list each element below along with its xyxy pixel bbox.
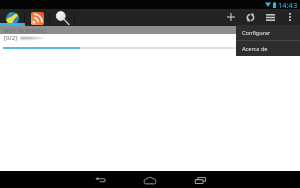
button[interactable]: [0/2] [0, 34, 300, 52]
staticText: 14:43 [278, 0, 298, 9]
staticText: Acerca de [242, 45, 268, 53]
button[interactable]: Back [89, 173, 111, 187]
button[interactable]: Browser tab [0, 10, 25, 26]
button[interactable]: More options [281, 9, 299, 25]
button[interactable]: Recent apps [189, 173, 211, 187]
button[interactable]: Configurar [236, 25, 300, 40]
staticText: NOT_RUNNING [4, 27, 48, 35]
button[interactable]: Feeds tab [25, 10, 50, 26]
button[interactable]: Add [221, 9, 240, 25]
button[interactable]: Home [139, 173, 161, 187]
button[interactable]: Acerca de [236, 41, 300, 56]
button[interactable]: Refresh [241, 9, 260, 25]
button[interactable]: Search tab [50, 10, 75, 26]
button[interactable]: List view [261, 9, 280, 25]
staticText: [0/2] [4, 34, 18, 42]
staticText: Configurar [242, 29, 271, 37]
